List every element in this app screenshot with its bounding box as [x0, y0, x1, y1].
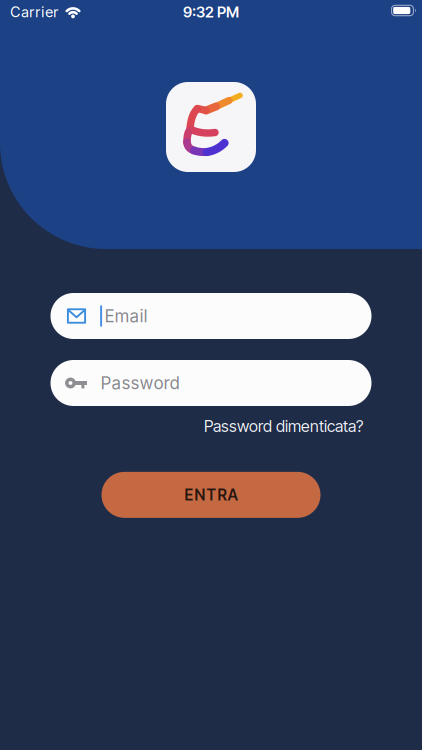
button[interactable]: Email [50, 293, 371, 339]
staticText: 9:32 PM [183, 3, 239, 21]
staticText: Password dimenticata? [204, 416, 363, 436]
staticText: E [184, 486, 193, 504]
staticText: T [206, 486, 216, 504]
staticText: A [227, 486, 237, 504]
button[interactable]: E [101, 472, 320, 518]
staticText: Password [100, 373, 179, 393]
staticText: Email [105, 306, 148, 326]
button[interactable]: Password [50, 360, 371, 406]
button[interactable]: Password dimenticata? [204, 416, 363, 436]
staticText: N [194, 486, 205, 504]
staticText: R [217, 486, 226, 504]
staticText: Carrier [10, 3, 58, 21]
